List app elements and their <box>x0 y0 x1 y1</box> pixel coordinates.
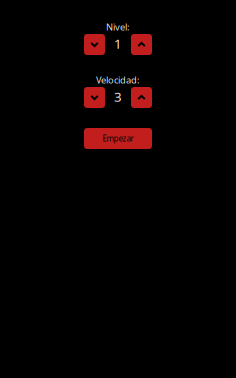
staticText: Velocidad: <box>96 74 140 86</box>
staticText: 3 <box>114 88 122 105</box>
button[interactable]: Increase Velocidad <box>131 87 152 108</box>
button[interactable]: Empezar <box>84 128 152 149</box>
staticText: 1 <box>114 35 122 52</box>
staticText: Empezar <box>102 133 133 144</box>
staticText: Nivel: <box>106 21 130 33</box>
button[interactable]: Increase Nivel <box>131 34 152 55</box>
button[interactable]: Decrease Velocidad <box>84 87 105 108</box>
button[interactable]: Decrease Nivel <box>84 34 105 55</box>
